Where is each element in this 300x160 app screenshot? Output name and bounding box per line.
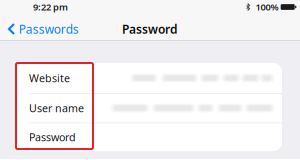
- staticText: User name: [29, 101, 84, 115]
- staticText: Website: [29, 71, 70, 85]
- staticText: Password: [122, 21, 178, 37]
- button[interactable]: Passwords: [0, 14, 85, 41]
- staticText: Passwords: [19, 21, 79, 37]
- staticText: 9:22 pm: [33, 1, 68, 13]
- staticText: 100%: [255, 1, 278, 13]
- staticText: Password: [29, 130, 76, 144]
- button[interactable]: Password: [16, 123, 282, 151]
- button[interactable]: User name: [16, 94, 282, 123]
- button[interactable]: Website: [16, 63, 282, 93]
